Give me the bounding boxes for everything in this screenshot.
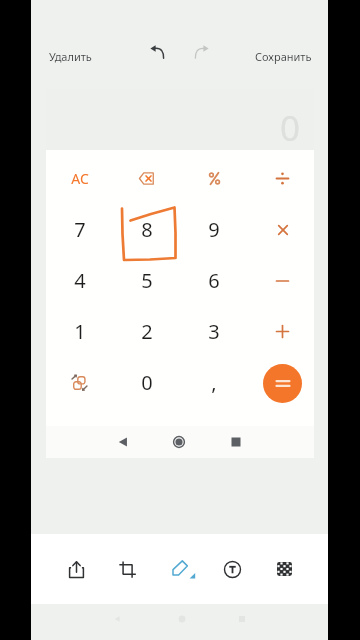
button[interactable]: 3 [180,306,247,357]
button[interactable]: Back [112,431,134,453]
button[interactable]: Redo [186,40,218,72]
button[interactable]: 0 [113,357,180,408]
staticText: 8 [141,216,153,243]
button[interactable]: Crop [105,547,149,591]
button[interactable]: Equals [247,357,314,408]
button[interactable]: Recents [231,608,253,630]
button[interactable]: Draw [158,547,202,591]
button[interactable]: 6 [180,255,247,306]
button[interactable]: Home [168,431,190,453]
button[interactable]: Mosaic [262,547,306,591]
other: Equals [263,364,302,403]
staticText: 1 [74,318,86,345]
button[interactable] [247,306,314,357]
other: Backspace [139,172,154,185]
button[interactable] [247,255,314,306]
staticText: Сохранить [255,49,312,64]
other: Converter [71,374,88,391]
staticText: 4 [74,267,86,294]
button[interactable]: 9 [180,204,247,255]
button[interactable]: 1 [46,306,113,357]
button[interactable]: Converter [46,357,113,408]
button[interactable]: 5 [113,255,180,306]
staticText: Удалить [49,49,92,64]
staticText: 2 [141,318,153,345]
button[interactable]: Home [171,608,193,630]
staticText: 6 [208,267,220,294]
staticText: 0 [141,369,153,396]
button[interactable]: 8 [113,204,180,255]
button[interactable]: Add text [210,547,254,591]
button[interactable]: Share [54,547,98,591]
staticText: 5 [141,267,153,294]
button[interactable]: 7 [46,204,113,255]
button[interactable]: AC [46,153,113,204]
button[interactable]: Сохранить [247,40,320,72]
button[interactable] [247,204,314,255]
button[interactable]: Удалить [41,40,100,72]
staticText: 3 [208,318,220,345]
staticText: AC [71,169,89,188]
button[interactable] [247,153,314,204]
button[interactable] [180,153,247,204]
staticText: 9 [208,216,220,243]
button[interactable]: 2 [113,306,180,357]
button[interactable]: , [180,357,247,408]
staticText: , [211,369,217,396]
button[interactable]: 4 [46,255,113,306]
button[interactable]: Backspace [113,153,180,204]
staticText: 7 [74,216,86,243]
button[interactable]: Recents [225,431,247,453]
button[interactable]: Undo [141,40,173,72]
staticText: 0 [280,104,301,152]
